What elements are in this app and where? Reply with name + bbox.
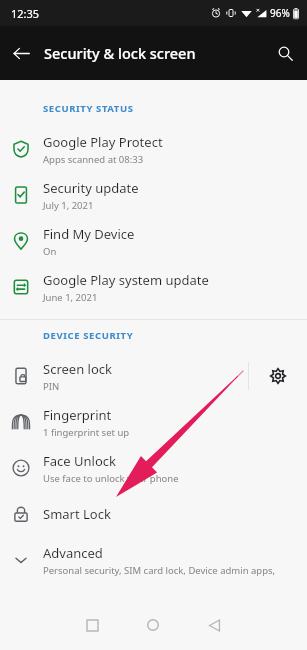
button[interactable]: Screen lock <box>0 353 248 399</box>
staticText: Fingerprint <box>43 406 112 424</box>
staticText: Face Unlock <box>43 452 116 470</box>
button[interactable]: Security update <box>0 172 307 218</box>
button[interactable]: Search <box>272 40 298 66</box>
staticText: Apps scanned at 08:33 <box>43 153 144 166</box>
button[interactable]: Smart Lock <box>0 491 307 537</box>
staticText: 96% <box>270 6 290 20</box>
button[interactable]: Recents <box>76 609 108 641</box>
staticText: Security update <box>43 179 139 197</box>
button[interactable]: Find My Device <box>0 218 307 264</box>
staticText: Smart Lock <box>43 505 111 523</box>
staticText: Advanced <box>43 544 103 562</box>
staticText: Google Play Protect <box>43 133 163 151</box>
button[interactable]: Fingerprint <box>0 399 307 445</box>
staticText: June 1, 2021 <box>43 291 98 304</box>
staticText: Google Play system update <box>43 271 209 289</box>
staticText: 12:35 <box>11 6 40 21</box>
button[interactable]: Google Play Protect <box>0 126 307 172</box>
staticText: DEVICE SECURITY <box>43 329 134 342</box>
button[interactable]: Back <box>8 40 34 66</box>
staticText: July 1, 2021 <box>43 199 94 212</box>
button[interactable]: Back <box>198 609 230 641</box>
staticText: On <box>43 245 57 258</box>
staticText: Use face to unlock your phone <box>43 472 179 485</box>
staticText: Screen lock <box>43 360 112 378</box>
button[interactable]: Face Unlock <box>0 445 307 491</box>
staticText: 1 fingerprint set up <box>43 426 130 439</box>
staticText: PIN <box>43 380 60 393</box>
button[interactable]: Advanced <box>0 537 307 583</box>
button[interactable]: Home <box>137 609 169 641</box>
staticText: Personal security, SIM card lock, Device… <box>43 564 297 577</box>
button[interactable]: Screen lock settings <box>249 353 307 399</box>
staticText: Find My Device <box>43 225 135 243</box>
staticText: SECURITY STATUS <box>43 102 134 115</box>
button[interactable]: Google Play system update <box>0 264 307 310</box>
staticText: Security & lock screen <box>44 43 196 63</box>
